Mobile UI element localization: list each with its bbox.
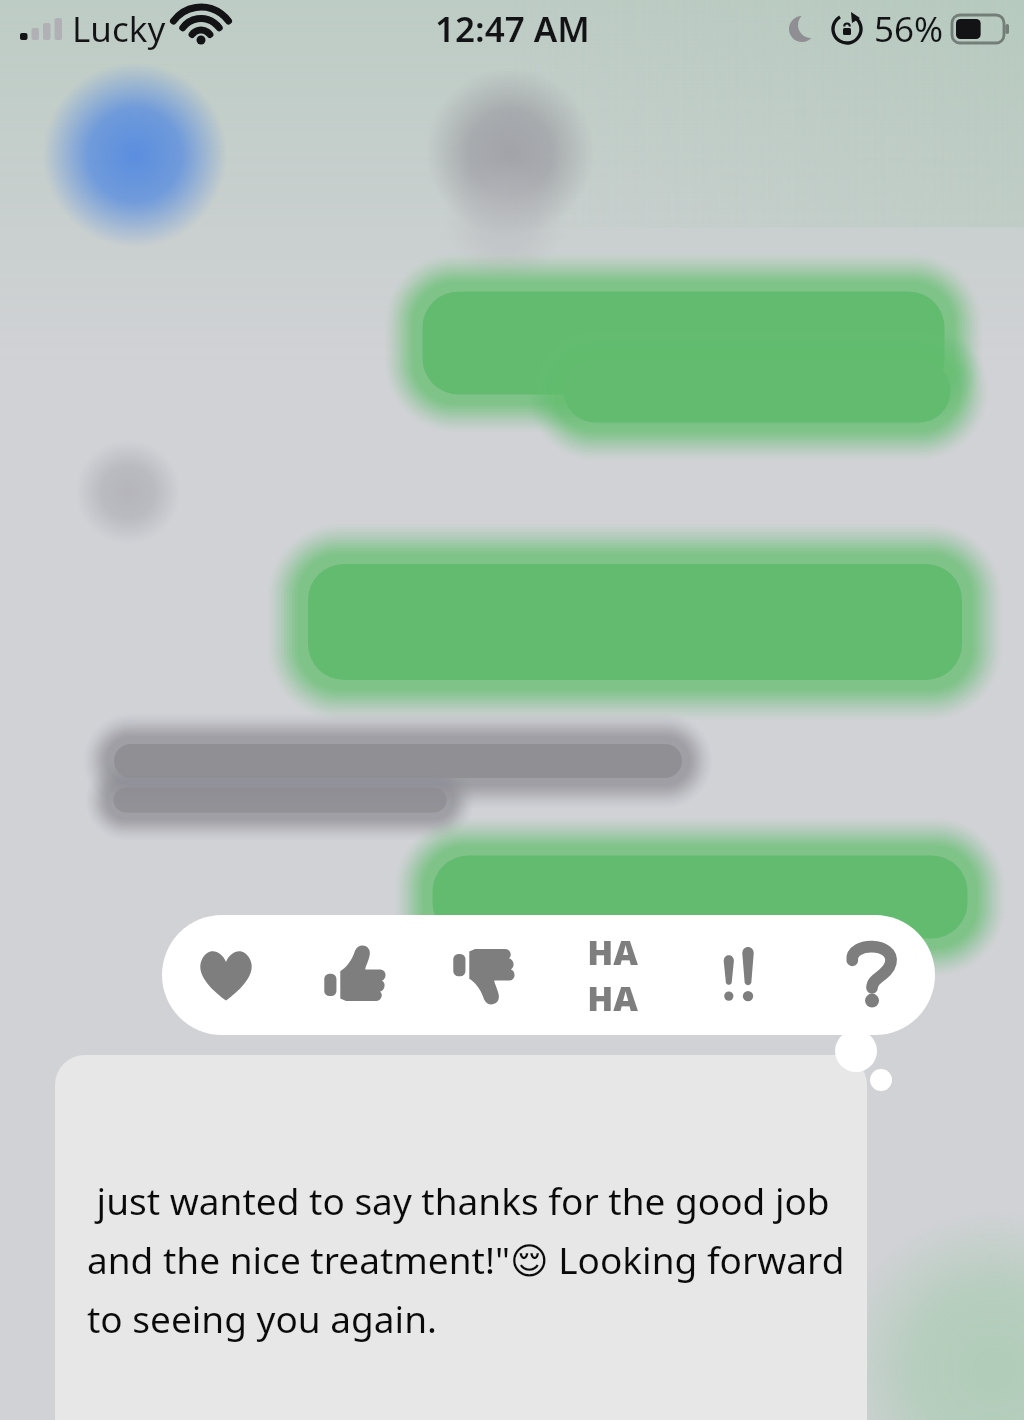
staticText: just wanted to say thanks for the good j… (87, 1175, 845, 1344)
staticText: 56% (874, 5, 944, 53)
button[interactable]: Exclamation reaction (677, 915, 806, 1035)
staticText: Lucky (72, 5, 166, 53)
button[interactable]: Question reaction (806, 915, 935, 1035)
button[interactable]: Thumbs down reaction (419, 915, 548, 1035)
button[interactable]: Thumbs up reaction (290, 915, 419, 1035)
staticText: HA (587, 929, 638, 975)
button[interactable]: Haha reaction (548, 915, 677, 1035)
staticText: 12:47 AM (435, 5, 590, 53)
button[interactable]: Love reaction (162, 915, 290, 1035)
staticText: HA (587, 975, 638, 1021)
